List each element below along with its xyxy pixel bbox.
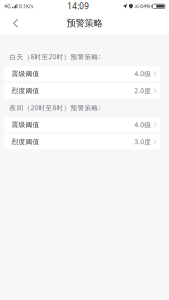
staticText: 3.0度: [134, 137, 151, 146]
button[interactable]: 震级阈值: [0, 116, 169, 133]
staticText: 4G: [4, 3, 11, 10]
staticText: 烈度阈值: [11, 138, 39, 146]
button[interactable]: 烈度阈值: [0, 82, 169, 99]
button[interactable]: 震级阈值: [0, 65, 169, 82]
staticText: 预警策略: [66, 17, 102, 29]
staticText: 烈度阈值: [11, 87, 39, 95]
staticText: 夜间（20时至8时）预警策略:: [9, 103, 100, 112]
staticText: 4.0级: [134, 120, 151, 129]
staticText: 14:09: [67, 1, 89, 11]
staticText: 震级阈值: [11, 70, 39, 78]
staticText: 0.1K/s: [19, 3, 34, 10]
button[interactable]: 烈度阈值: [0, 133, 169, 150]
staticText: 2.0度: [134, 86, 151, 95]
staticText: 震级阈值: [11, 121, 39, 129]
staticText: 4.0级: [134, 69, 151, 78]
staticText: 64%: [140, 3, 150, 10]
button[interactable]: 返回: [5, 13, 25, 33]
staticText: 4G: [134, 4, 139, 9]
staticText: 白天（8时至20时）预警策略:: [9, 52, 100, 61]
